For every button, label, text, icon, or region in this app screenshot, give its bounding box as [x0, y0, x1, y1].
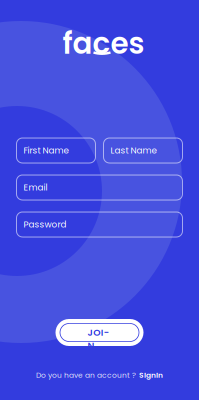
button[interactable]: Do you have an account ?: [36, 370, 163, 380]
button[interactable]: First Name: [16, 138, 95, 163]
staticText: Signin: [139, 370, 163, 380]
button[interactable]: Password: [16, 212, 182, 237]
button[interactable]: Email: [16, 175, 182, 200]
button[interactable]: JOIN: [55, 319, 143, 346]
staticText: Password: [23, 218, 66, 231]
staticText: Email: [23, 181, 47, 194]
staticText: JOIN: [87, 326, 111, 339]
staticText: Last Name: [110, 144, 156, 157]
staticText: faces: [62, 23, 144, 64]
button[interactable]: Last Name: [103, 138, 182, 163]
staticText: First Name: [23, 144, 68, 157]
staticText: Do you have an account ?: [36, 370, 136, 380]
